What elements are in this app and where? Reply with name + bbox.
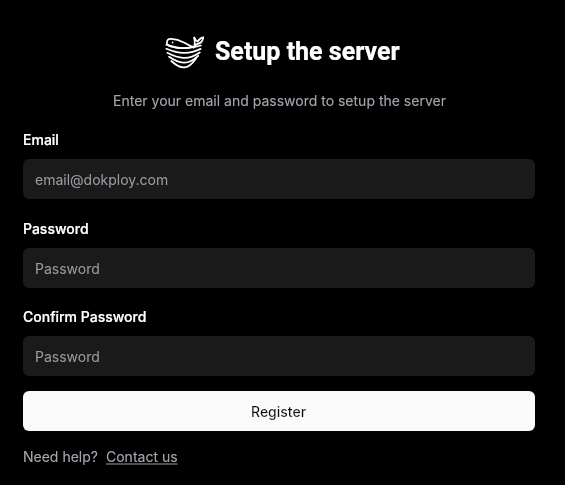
button[interactable]: Password [23, 336, 535, 376]
button[interactable]: email@dokploy.com [23, 159, 535, 199]
staticText: Password [35, 260, 100, 277]
staticText: Setup the server [215, 37, 400, 66]
button[interactable]: Register [23, 391, 535, 431]
staticText: Contact us [106, 448, 178, 465]
staticText: Password [35, 348, 100, 365]
staticText: Need help? [23, 448, 98, 465]
staticText: Confirm Password [23, 308, 147, 325]
button[interactable]: Password [23, 248, 535, 288]
staticText: Enter your email and password to setup t… [113, 92, 446, 109]
staticText: Email [23, 131, 59, 148]
staticText: Register [251, 403, 307, 420]
staticText: email@dokploy.com [35, 171, 169, 188]
staticText: Password [23, 220, 89, 237]
button[interactable]: Contact us [106, 448, 178, 465]
